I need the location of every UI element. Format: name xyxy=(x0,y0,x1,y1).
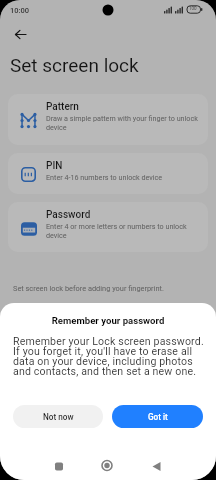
staticText: Not now xyxy=(43,412,74,422)
button[interactable] xyxy=(97,458,119,480)
staticText: Enter 4 or more letters or numbers to un… xyxy=(46,222,187,240)
staticText: Set screen lock before adding your finge… xyxy=(13,284,164,293)
staticText: 100 xyxy=(189,6,197,11)
staticText: Got it xyxy=(148,412,168,422)
button[interactable] xyxy=(145,458,167,480)
staticText: Set screen lock xyxy=(10,54,139,76)
staticText: Draw a simple pattern with your finger t… xyxy=(46,114,198,132)
button[interactable]: Not now xyxy=(13,405,103,428)
staticText: Remember your Lock screen password. If y… xyxy=(13,335,204,378)
staticText: PIN xyxy=(46,160,63,172)
staticText: Remember your password xyxy=(0,315,216,326)
button[interactable]: PIN xyxy=(8,153,208,194)
button[interactable] xyxy=(49,458,71,480)
staticText: Pattern xyxy=(46,101,79,113)
button[interactable]: Pattern xyxy=(8,94,208,145)
staticText: Enter 4-16 numbers to unlock device xyxy=(46,173,163,181)
staticText: 10:00 xyxy=(10,6,30,15)
staticText: Password xyxy=(46,209,91,221)
button[interactable] xyxy=(8,22,32,46)
button[interactable]: Password xyxy=(8,202,208,252)
button[interactable]: Got it xyxy=(112,405,203,428)
